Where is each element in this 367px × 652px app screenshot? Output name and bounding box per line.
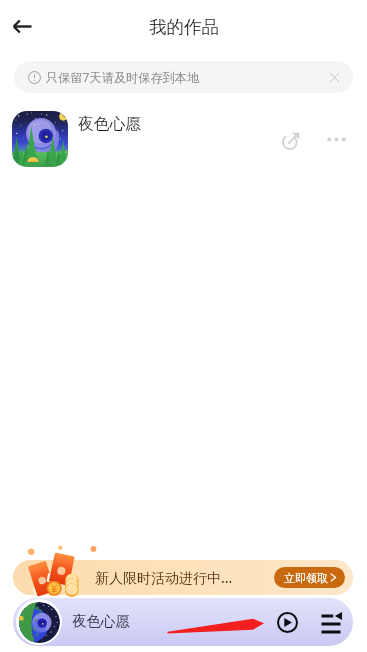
button[interactable]: Play: [13, 598, 353, 646]
button[interactable]: Playlist: [314, 605, 348, 639]
button[interactable]: Back: [1, 5, 43, 47]
button[interactable]: Close: [325, 68, 343, 86]
staticText: 我的作品: [149, 16, 219, 38]
button[interactable]: More options: [318, 123, 354, 159]
staticText: 夜色心愿: [78, 114, 142, 134]
staticText: 立即领取: [284, 571, 328, 585]
button[interactable]: 立即领取: [274, 567, 345, 588]
button[interactable]: Share: [273, 123, 309, 159]
staticText: 只保留7天请及时保存到本地: [46, 69, 200, 86]
button[interactable]: 新人限时活动进行中...: [13, 560, 353, 595]
staticText: 新人限时活动进行中...: [95, 568, 233, 587]
button[interactable]: 只保留7天请及时保存到本地: [14, 61, 353, 93]
button[interactable]: 夜色心愿: [0, 110, 367, 168]
button[interactable]: Play: [270, 605, 304, 639]
staticText: 夜色心愿: [72, 612, 130, 630]
